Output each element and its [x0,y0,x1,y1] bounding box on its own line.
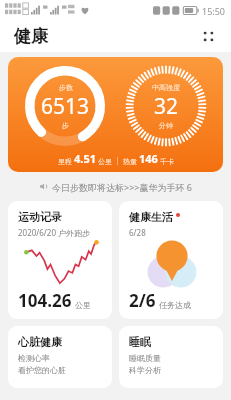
staticText: 6513 [41,92,90,121]
staticText: 今日步数即将达标>>>赢华为手环 6 [52,181,192,193]
button[interactable]: 睡眠 [119,326,223,388]
staticText: 公里 [98,157,112,166]
staticText: 2/6 [129,289,156,312]
staticText: 104.26 [18,289,72,312]
button[interactable]: 健康生活 [119,201,223,319]
staticText: 心脏健康 [18,335,62,349]
button[interactable]: 今日步数即将达标>>>赢华为手环 6 [0,172,231,201]
staticText: 146 [139,151,158,166]
button[interactable]: 运动记录 [8,201,112,319]
button[interactable]: 步数 [8,57,223,172]
staticText: 检测心率 [18,353,50,363]
button[interactable]: 心脏健康 [8,326,112,388]
staticText: 步数 [59,83,73,92]
staticText: 中高强度 [152,83,180,92]
staticText: 2020/6/20 户外跑步 [18,227,91,238]
staticText: 任务达成 [159,300,191,310]
staticText: 步 [62,121,69,130]
staticText: 公里 [75,300,91,310]
staticText: 千卡 [160,157,174,166]
staticText: 科学分析 [129,365,161,375]
button[interactable]: More options [195,23,221,49]
staticText: 健康生活 [129,210,173,224]
staticText: 睡眠质量 [129,353,161,363]
staticText: 6/28 [129,227,146,238]
staticText: 4.51 [74,151,96,166]
staticText: 健康 [14,26,48,47]
staticText: 热量 [123,157,137,166]
staticText: 里程 [58,157,72,166]
staticText: 运动记录 [18,210,62,224]
staticText: 15:50 [202,5,226,17]
staticText: 看护您的心脏 [18,365,66,375]
staticText: 分钟 [159,121,173,130]
staticText: 睡眠 [129,335,151,349]
staticText: 32 [154,92,179,121]
